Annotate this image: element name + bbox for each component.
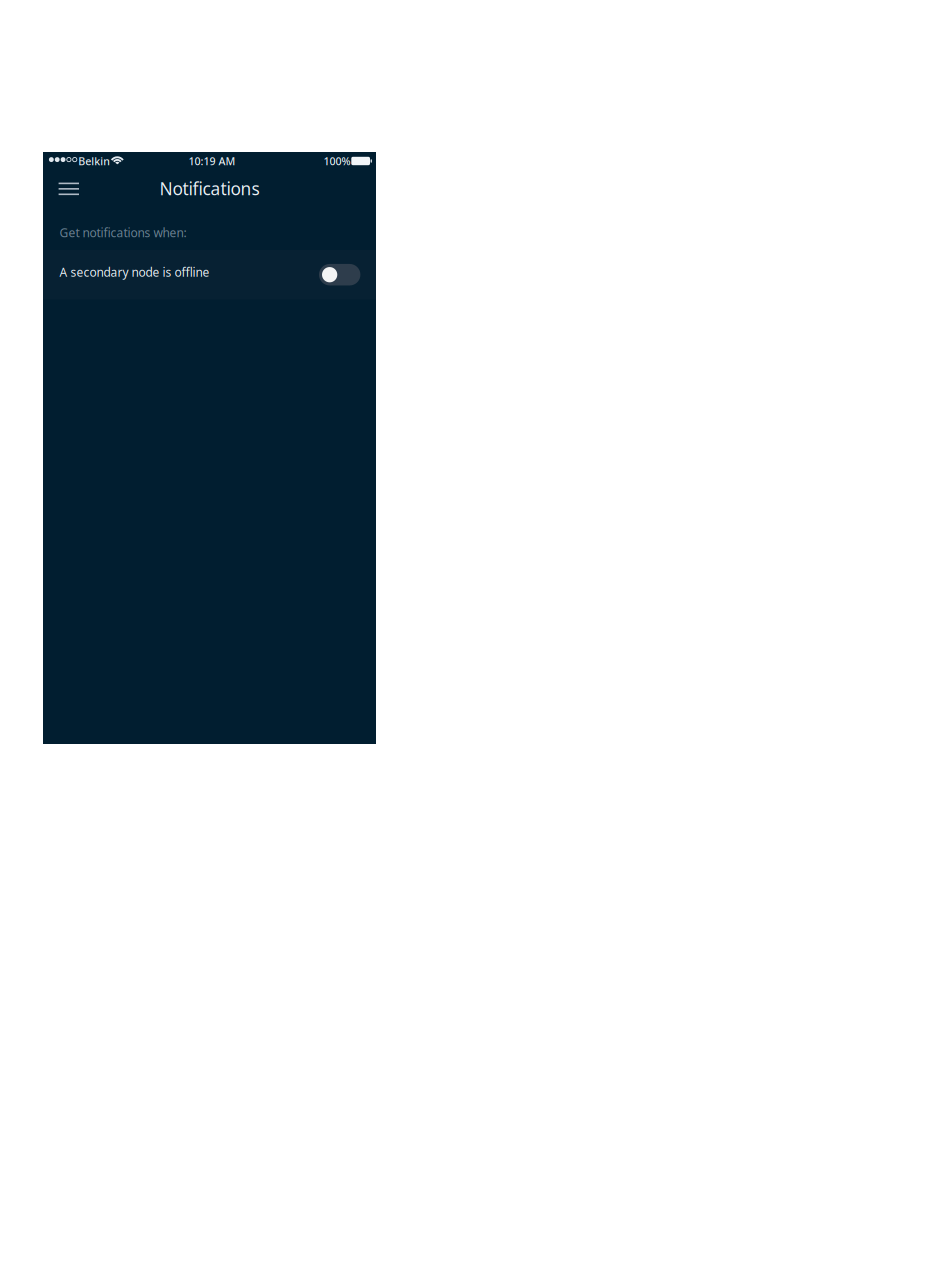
button[interactable]: A secondary node is offline [43, 250, 376, 299]
button[interactable]: A secondary node is offline, off [319, 264, 360, 285]
staticText: Get notifications when: [59, 224, 186, 241]
staticText: Belkin [78, 154, 110, 168]
button[interactable]: Menu [53, 173, 84, 205]
staticText: 10:19 AM [188, 154, 235, 168]
staticText: A secondary node is offline [59, 264, 209, 280]
staticText: 100% [323, 154, 350, 168]
staticText: Notifications [159, 177, 259, 200]
